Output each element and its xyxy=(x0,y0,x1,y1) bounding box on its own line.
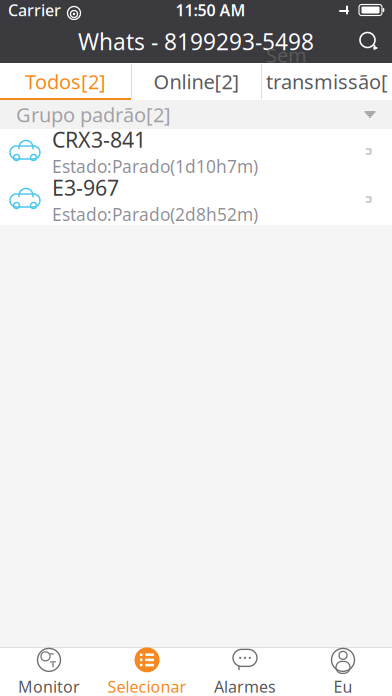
staticText: Carrier xyxy=(8,0,61,21)
staticText: Alarmes xyxy=(214,676,276,696)
button[interactable]: Alarmes xyxy=(196,648,294,696)
staticText: Monitor xyxy=(18,676,80,696)
button[interactable]: Eu xyxy=(294,648,392,696)
staticText: 11:50 AM xyxy=(175,0,245,21)
staticText: Estado:Parado(1d10h7m) xyxy=(52,155,258,178)
button[interactable]: Selecionar xyxy=(98,648,196,696)
staticText: Sem transmissão[0] xyxy=(266,42,388,121)
staticText: Eu xyxy=(333,676,352,696)
staticText: E3-967 xyxy=(52,173,119,202)
button[interactable]: Grupo padrão[2] xyxy=(0,100,392,129)
button[interactable]: E3-967 xyxy=(0,177,392,225)
button[interactable]: CRX3-841 xyxy=(0,129,392,177)
button[interactable]: Monitor xyxy=(0,648,98,696)
button[interactable]: Sem transmissão[0] xyxy=(262,63,392,100)
button[interactable]: Todos[2] xyxy=(0,63,131,100)
staticText: Grupo padrão[2] xyxy=(16,101,171,128)
staticText: Selecionar xyxy=(107,676,186,696)
staticText: Online[2] xyxy=(153,68,239,95)
button[interactable]: Search xyxy=(346,20,392,63)
staticText: Todos[2] xyxy=(25,68,106,95)
staticText: Whats - 8199293-5498 xyxy=(78,26,314,56)
staticText: Estado:Parado(2d8h52m) xyxy=(52,203,258,226)
staticText: CRX3-841 xyxy=(52,125,146,154)
button[interactable]: Online[2] xyxy=(132,63,261,100)
